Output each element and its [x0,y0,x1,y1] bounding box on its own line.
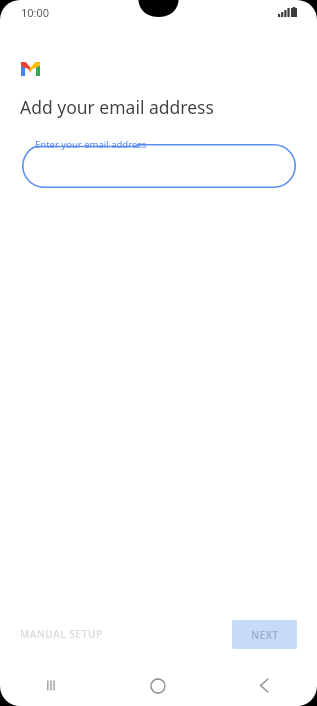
button[interactable]: MANUAL SETUP [12,621,111,647]
staticText: Enter your email address [35,138,147,151]
staticText: Add your email address [20,95,214,119]
button[interactable]: NEXT [232,620,297,649]
button[interactable]: Home [105,665,211,706]
staticText: MANUAL SETUP [20,627,103,641]
button[interactable]: Enter your email address [22,137,296,188]
button[interactable]: Recent apps [0,665,105,706]
staticText: NEXT [251,628,279,642]
staticText: 10:00 [21,5,50,20]
button[interactable]: Back [211,665,317,706]
